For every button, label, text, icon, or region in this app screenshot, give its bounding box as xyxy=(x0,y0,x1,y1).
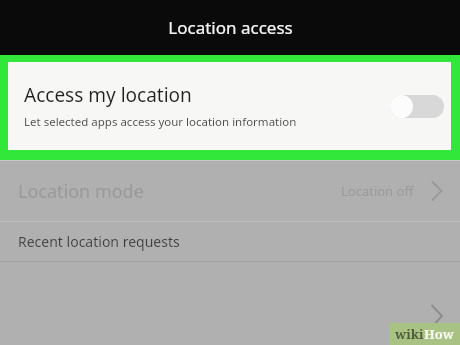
staticText: Access my location xyxy=(24,82,192,108)
staticText: How xyxy=(424,325,454,343)
staticText: Recent location requests xyxy=(18,232,180,251)
other: Open xyxy=(428,303,446,329)
staticText: Location mode xyxy=(18,179,341,204)
staticText: Location off xyxy=(341,182,414,200)
staticText: Location access xyxy=(168,16,293,39)
button[interactable]: Location mode xyxy=(0,161,460,221)
staticText: wiki xyxy=(395,325,424,343)
button[interactable]: Access my location xyxy=(8,62,451,150)
button[interactable]: Open xyxy=(0,290,460,342)
button[interactable]: Access my location toggle, off xyxy=(390,95,444,118)
staticText: Let selected apps access your location i… xyxy=(24,114,297,130)
